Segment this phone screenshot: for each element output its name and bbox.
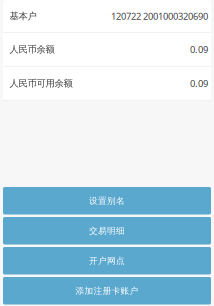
- staticText: 开户网点: [89, 255, 125, 266]
- staticText: 120722 2001000320690: [111, 10, 208, 22]
- staticText: 人民币余额: [9, 43, 54, 55]
- staticText: 设置别名: [89, 195, 125, 206]
- staticText: 0.09: [190, 43, 208, 56]
- button[interactable]: 开户网点: [3, 247, 211, 274]
- button[interactable]: 交易明细: [3, 217, 211, 244]
- staticText: 添加注册卡账户: [75, 285, 138, 296]
- staticText: 交易明细: [89, 225, 125, 236]
- button[interactable]: 添加注册卡账户: [3, 277, 211, 304]
- staticText: 人民币可用余额: [9, 77, 72, 89]
- staticText: 0.09: [190, 77, 208, 90]
- staticText: 基本户: [9, 10, 36, 22]
- button[interactable]: 设置别名: [3, 187, 211, 214]
